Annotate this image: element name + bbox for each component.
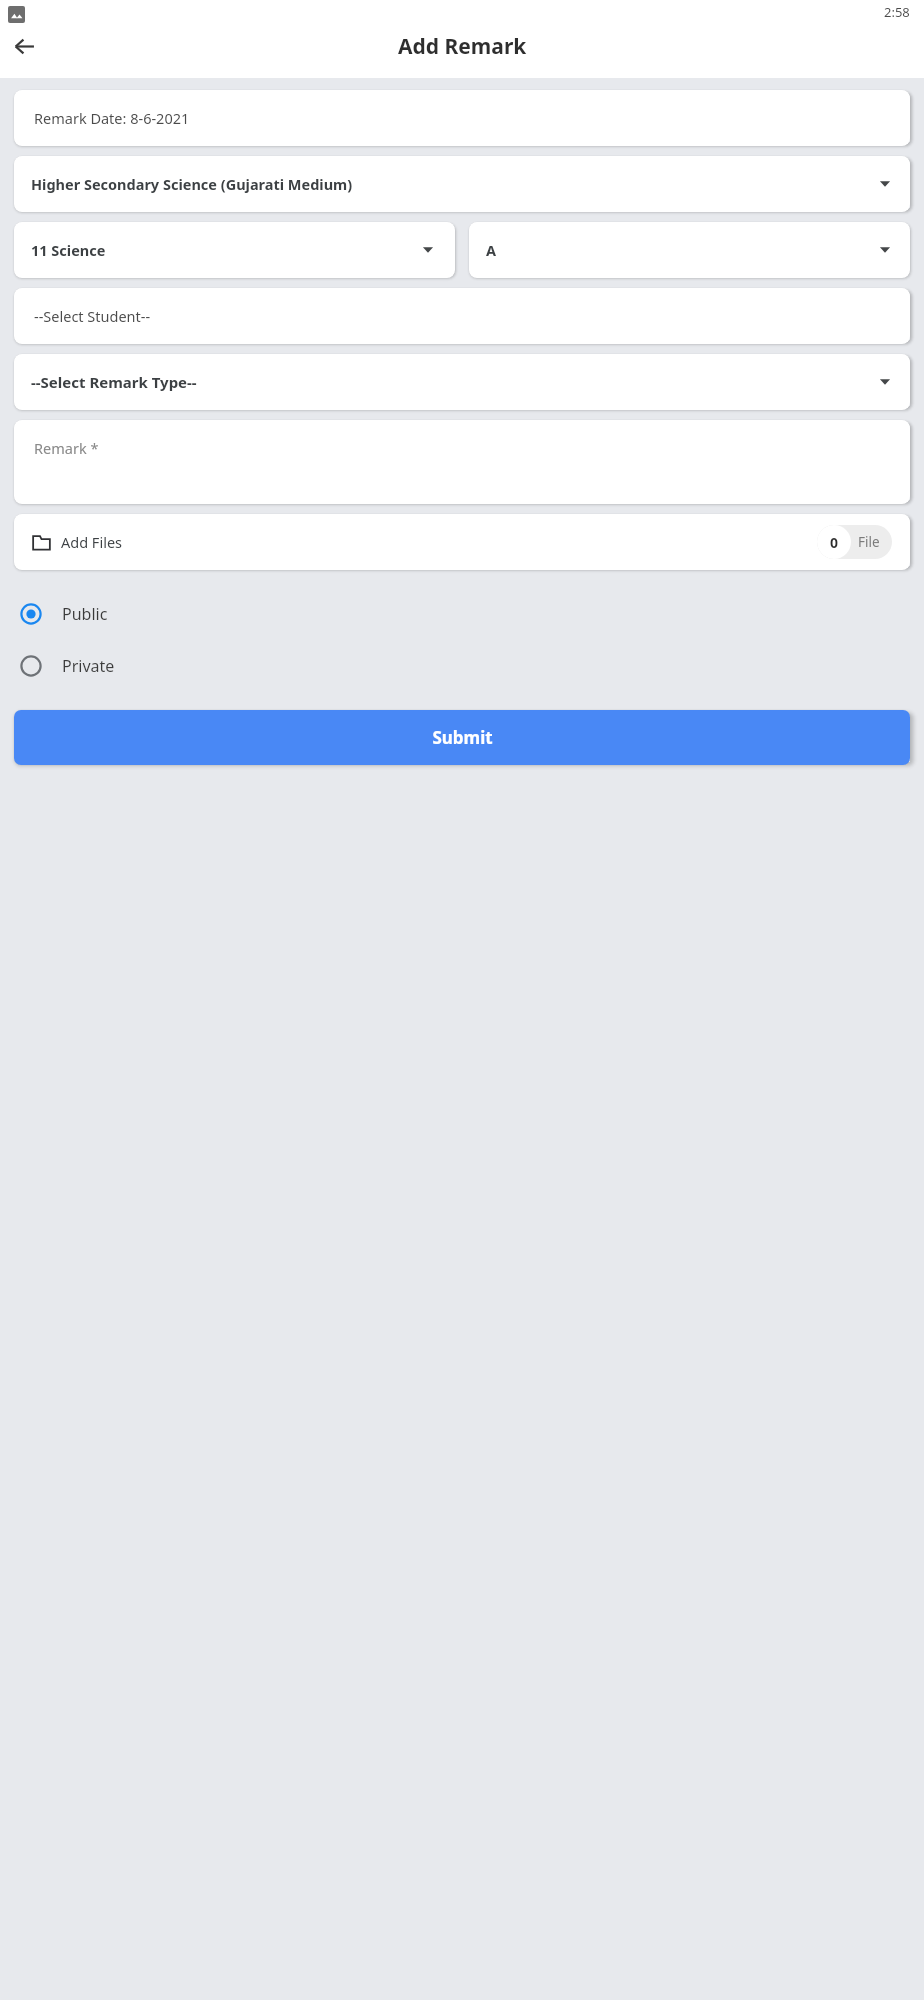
staticText: --Select Remark Type--: [31, 372, 197, 392]
button[interactable]: Public: [0, 592, 924, 636]
staticText: File: [858, 533, 880, 551]
staticText: 11 Science: [31, 240, 106, 260]
staticText: A: [486, 240, 497, 260]
staticText: Private: [62, 655, 115, 677]
button[interactable]: 11 Science: [14, 222, 455, 278]
button[interactable]: --Select Student--: [14, 288, 910, 344]
staticText: 0: [830, 533, 839, 552]
button[interactable]: Remark *: [14, 420, 910, 504]
staticText: Higher Secondary Science (Gujarati Mediu…: [31, 174, 353, 194]
button[interactable]: Add Files: [14, 514, 910, 570]
button[interactable]: Private: [0, 644, 924, 688]
button[interactable]: Higher Secondary Science (Gujarati Mediu…: [14, 156, 910, 212]
staticText: Remark Date: 8-6-2021: [34, 108, 190, 128]
staticText: Add Files: [61, 532, 123, 552]
staticText: Submit: [432, 726, 493, 749]
button[interactable]: Submit: [14, 710, 910, 765]
button[interactable]: A: [469, 222, 910, 278]
button[interactable]: --Select Remark Type--: [14, 354, 910, 410]
staticText: --Select Student--: [34, 306, 151, 326]
staticText: Add Remark: [398, 32, 527, 61]
staticText: 2:58: [884, 3, 910, 21]
button[interactable]: Back: [0, 22, 48, 70]
staticText: Public: [62, 603, 108, 625]
button[interactable]: Remark Date: 8-6-2021: [14, 90, 910, 146]
staticText: Remark *: [34, 438, 99, 458]
